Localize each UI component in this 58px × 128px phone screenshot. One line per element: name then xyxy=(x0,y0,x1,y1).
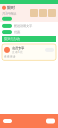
staticText: 配送说明文字 xyxy=(14,24,32,28)
staticText: 限时活动 xyxy=(4,36,20,41)
staticText: 会员专享 xyxy=(12,46,24,50)
staticText: 共3件商品 xyxy=(2,11,16,16)
staticText: 优惠 xyxy=(14,30,20,34)
staticText: 限时 xyxy=(7,5,15,10)
staticText: 查看更多 xyxy=(4,55,16,58)
staticText: 立省5元 xyxy=(12,50,23,54)
